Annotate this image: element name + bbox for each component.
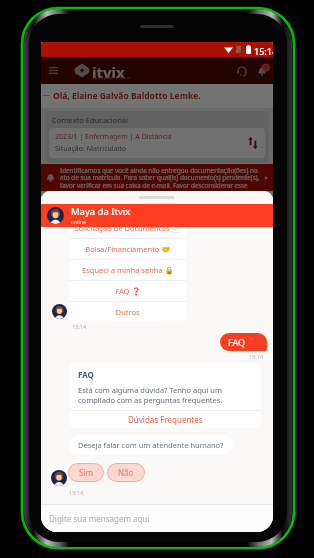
staticText: Não <box>118 467 134 478</box>
staticText: Maya da Itvix <box>71 205 131 218</box>
staticText: online <box>71 219 86 226</box>
button[interactable]: Outros <box>69 302 186 322</box>
button[interactable]: Maya da Itvix <box>41 204 273 227</box>
button[interactable]: Solicitação de Documentos 📄 <box>69 218 186 238</box>
staticText: Situação: Matriculado <box>55 144 127 154</box>
staticText: 15:14 <box>254 45 273 57</box>
staticText: Deseja falar com um atendente humano? <box>78 440 224 450</box>
staticText: Contexto Educacional <box>52 115 128 125</box>
staticText: itvix <box>92 62 125 82</box>
staticText: 2023/1 | Enfermagem | A Distância <box>55 132 172 142</box>
staticText: FAQ <box>78 369 94 380</box>
button[interactable]: Identificamos que você ainda não entrego… <box>41 164 273 191</box>
button[interactable]: Não <box>107 463 145 482</box>
staticText: Outros <box>115 307 140 317</box>
staticText: Bolsa/Financiamento 🤝 <box>85 244 171 254</box>
staticText: Solicitação de Documentos 📄 <box>74 223 181 233</box>
staticText: Digite sua mensagem aqui <box>49 513 150 524</box>
staticText: Olá, Elaine Galvão Baldotto Lemke. <box>53 90 201 102</box>
staticText: Sim <box>79 467 93 478</box>
button[interactable]: Bolsa/Financiamento 🤝 <box>69 239 186 259</box>
button[interactable]: FAQ ❓ <box>220 333 267 351</box>
button[interactable]: Digite sua mensagem aqui <box>41 505 273 532</box>
staticText: Identificamos que você ainda não entrego… <box>60 166 261 189</box>
staticText: FAQ ❓ <box>228 336 259 348</box>
staticText: tecnologia da informação <box>92 76 131 80</box>
button[interactable]: Sim <box>68 463 104 482</box>
staticText: 15:14 <box>249 353 264 360</box>
staticText: Esqueci a minha senha 🔒 <box>82 265 174 275</box>
staticText: 15:14 <box>69 489 84 496</box>
button[interactable]: Notificações <box>251 59 272 83</box>
button[interactable]: Menu <box>44 60 62 81</box>
staticText: 15:14 <box>72 323 87 330</box>
button[interactable]: Esqueci a minha senha 🔒 <box>69 260 186 280</box>
button[interactable]: FAQ ❓ <box>69 281 186 301</box>
button[interactable]: Suporte <box>231 59 252 83</box>
staticText: Dúvidas Frequentes <box>128 414 203 425</box>
staticText: Está com alguma dúvida? Tenho aqui um co… <box>78 385 252 405</box>
button[interactable]: Dúvidas Frequentes <box>69 411 261 428</box>
staticText: FAQ ❓ <box>115 286 141 296</box>
